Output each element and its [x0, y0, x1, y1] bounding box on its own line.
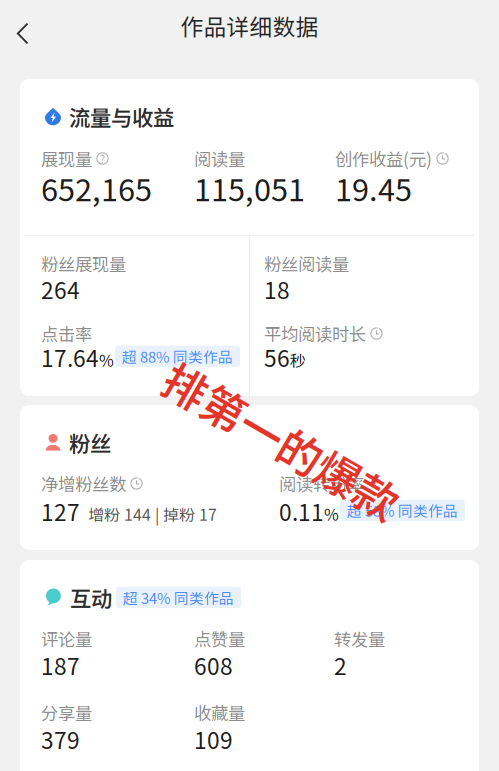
staticText: 互动 [70, 582, 112, 613]
staticText: 净增粉丝数 [41, 471, 126, 496]
staticText: 粉丝阅读量 [264, 251, 349, 276]
staticText: 阅读转粉率 [279, 471, 364, 496]
staticText: % [99, 348, 114, 371]
staticText: 评论量 [41, 626, 92, 651]
staticText: 109 [194, 723, 233, 755]
staticText: 115,051 [194, 166, 305, 210]
staticText: 0.11 [279, 495, 324, 527]
staticText: 转发量 [334, 626, 385, 651]
staticText: 阅读量 [194, 146, 245, 171]
staticText: 点赞量 [194, 626, 245, 651]
staticText: 分享量 [41, 700, 92, 725]
staticText: 平均阅读时长 [264, 321, 366, 346]
staticText: 652,165 [41, 166, 152, 210]
staticText: 187 [41, 649, 80, 681]
staticText: 超 58% 同类作品 [347, 500, 458, 521]
button[interactable]: Back [0, 11, 46, 56]
staticText: 2 [334, 649, 347, 681]
staticText: ? [99, 150, 105, 167]
staticText: 56 [264, 341, 290, 373]
staticText: 增粉 144 | 掉粉 17 [88, 502, 217, 525]
staticText: 608 [194, 649, 233, 681]
staticText: 19.45 [335, 166, 412, 210]
staticText: 作品详细数据 [180, 9, 318, 42]
staticText: 收藏量 [194, 700, 245, 725]
staticText: 点击率 [41, 321, 92, 346]
staticText: 127 [41, 495, 80, 527]
staticText: 排第一的爆款 [150, 408, 414, 472]
staticText: 379 [41, 723, 80, 755]
staticText: 秒 [290, 348, 306, 371]
staticText: 粉丝展现量 [41, 251, 126, 276]
staticText: 264 [41, 273, 80, 305]
staticText: 超 88% 同类作品 [122, 346, 233, 367]
staticText: 创作收益(元) [335, 146, 432, 171]
staticText: 流量与收益 [69, 101, 174, 132]
staticText: 18 [264, 273, 290, 305]
staticText: % [324, 502, 339, 525]
staticText: 超 34% 同类作品 [123, 587, 234, 608]
staticText: 展现量 [41, 146, 92, 171]
staticText: 17.64 [41, 341, 99, 373]
staticText: 粉丝 [69, 427, 111, 458]
